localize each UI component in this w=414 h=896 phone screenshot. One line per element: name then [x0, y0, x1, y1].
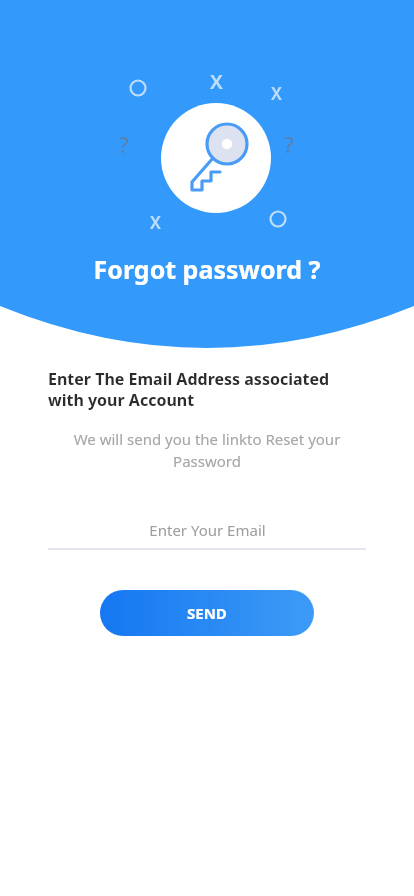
- staticText: ?: [284, 129, 294, 159]
- staticText: ?: [119, 129, 129, 159]
- staticText: Enter The Email Address associated with …: [48, 368, 366, 411]
- staticText: SEND: [187, 603, 227, 623]
- button[interactable]: SEND: [100, 590, 314, 636]
- staticText: X: [271, 82, 282, 105]
- staticText: Forgot password ?: [0, 252, 414, 286]
- staticText: X: [150, 211, 161, 234]
- staticText: Enter Your Email: [149, 520, 266, 540]
- staticText: X: [210, 68, 223, 95]
- button[interactable]: Enter Your Email: [48, 512, 366, 548]
- staticText: We will send you the linkto Reset your P…: [48, 429, 366, 472]
